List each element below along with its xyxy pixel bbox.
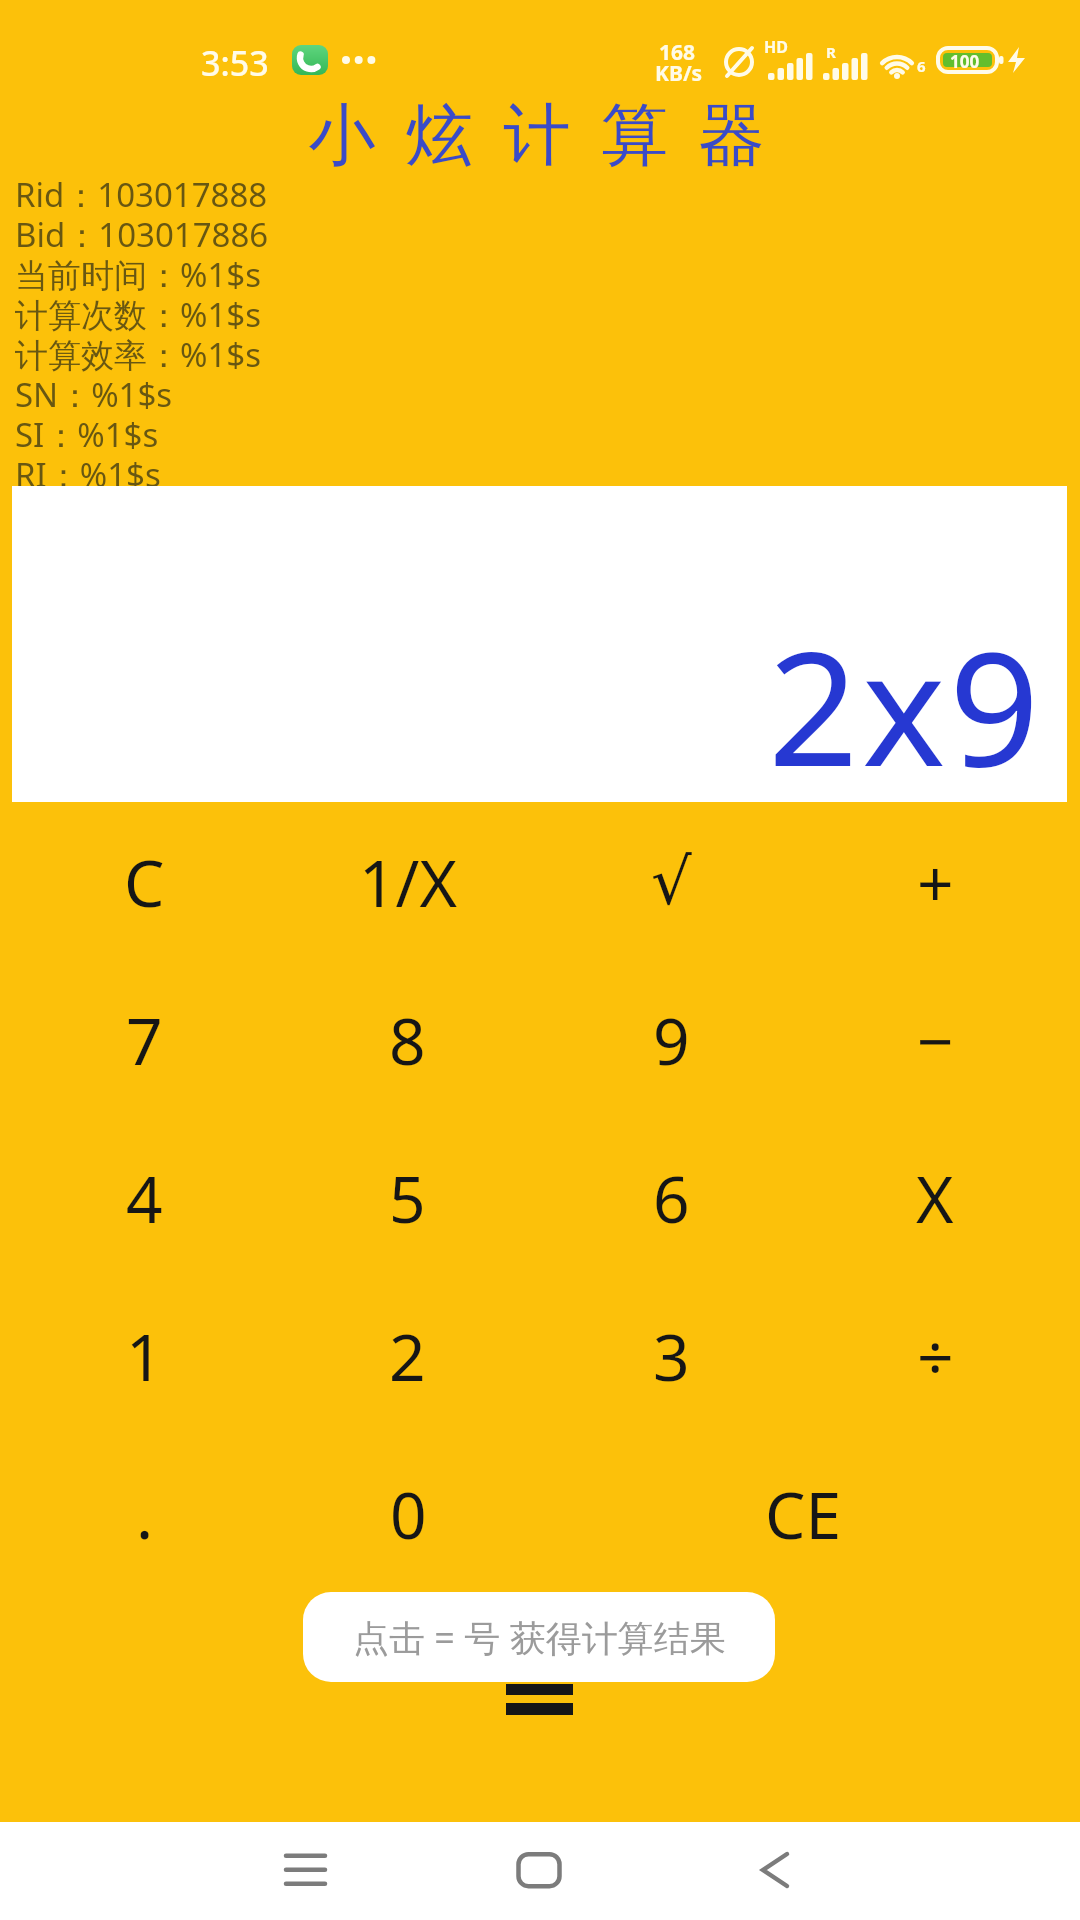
staticText: 2 <box>389 1313 426 1400</box>
staticText: 计算效率：%1$s <box>15 332 261 372</box>
staticText: ÷ <box>917 1313 954 1400</box>
button[interactable]: 9 <box>539 961 803 1119</box>
staticText: C <box>124 839 165 926</box>
button[interactable]: 点击 = 号 获得计算结果 <box>303 1592 775 1682</box>
button[interactable] <box>0 1822 360 1920</box>
staticText: X <box>916 1155 954 1242</box>
button[interactable]: 8 <box>276 961 539 1119</box>
button[interactable]: + <box>803 803 1067 961</box>
staticText: 8 <box>389 997 426 1084</box>
button[interactable]: − <box>803 961 1067 1119</box>
staticText: 点击 = 号 获得计算结果 <box>353 1613 726 1662</box>
button[interactable]: 5 <box>276 1119 539 1277</box>
staticText: SI：%1$s <box>15 412 159 452</box>
button[interactable]: 1 <box>13 1277 276 1435</box>
staticText: SN：%1$s <box>15 372 173 412</box>
button[interactable]: X <box>803 1119 1067 1277</box>
button[interactable]: 1/X <box>276 803 539 961</box>
button[interactable]: 7 <box>13 961 276 1119</box>
button[interactable]: 4 <box>13 1119 276 1277</box>
staticText: 9 <box>653 997 690 1084</box>
staticText: 4 <box>126 1155 163 1242</box>
staticText: HD <box>764 36 788 58</box>
staticText: KB/s <box>655 59 703 88</box>
staticText: 1 <box>126 1313 163 1400</box>
staticText: 7 <box>126 997 163 1084</box>
button[interactable]: √ <box>539 803 803 961</box>
staticText: 0 <box>390 1471 427 1558</box>
button[interactable]: 2 <box>276 1277 539 1435</box>
staticText: 计算次数：%1$s <box>15 292 261 332</box>
button[interactable] <box>496 1670 584 1730</box>
staticText: 6 <box>917 56 926 76</box>
staticText: 5 <box>389 1155 426 1242</box>
button[interactable]: 6 <box>539 1119 803 1277</box>
staticText: CE <box>765 1471 842 1558</box>
button[interactable]: . <box>13 1435 276 1593</box>
staticText: 6 <box>653 1155 690 1242</box>
staticText: 小 炫 计 算 器 <box>0 86 1080 178</box>
staticText: . <box>136 1471 154 1558</box>
button[interactable]: 3 <box>539 1277 803 1435</box>
staticText: + <box>917 839 954 926</box>
staticText: 100 <box>950 50 980 73</box>
staticText: 168 <box>659 38 696 67</box>
button[interactable]: ÷ <box>803 1277 1067 1435</box>
staticText: 3:53 <box>201 40 269 86</box>
staticText: − <box>917 997 954 1084</box>
staticText: 1/X <box>359 839 457 926</box>
staticText: RI：%1$s <box>15 452 161 492</box>
button[interactable] <box>720 1822 1080 1920</box>
staticText: 当前时间：%1$s <box>15 252 261 292</box>
staticText: Bid：103017886 <box>15 212 269 252</box>
button[interactable]: C <box>13 803 276 961</box>
staticText: √ <box>651 845 692 920</box>
staticText: 3 <box>653 1313 690 1400</box>
button[interactable]: 0 <box>276 1435 540 1593</box>
staticText: Rid：103017888 <box>15 172 268 212</box>
button[interactable] <box>360 1822 720 1920</box>
staticText: 2x9 <box>768 597 1043 812</box>
staticText: R <box>826 42 836 62</box>
button[interactable]: CE <box>540 1435 1067 1593</box>
